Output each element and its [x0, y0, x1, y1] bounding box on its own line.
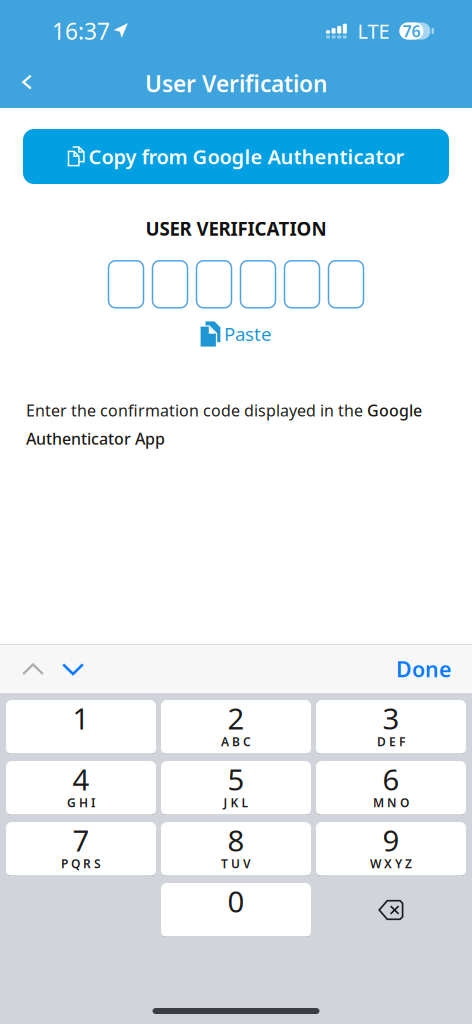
staticText: LTE — [357, 18, 389, 44]
button[interactable]: Digit 2 — [152, 261, 187, 308]
staticText: 8 — [227, 820, 244, 859]
button[interactable]: Back — [0, 60, 50, 103]
button[interactable]: 2 — [161, 700, 311, 754]
button[interactable]: 6 — [316, 761, 466, 815]
staticText: 76 — [402, 20, 420, 42]
button[interactable]: Digit 3 — [196, 261, 231, 308]
button[interactable]: 4 — [6, 761, 156, 815]
staticText: 2 — [227, 698, 244, 737]
staticText: G H I — [67, 794, 95, 810]
staticText: 3 — [382, 698, 399, 737]
staticText: J K L — [223, 794, 248, 810]
button[interactable]: 8 — [161, 822, 311, 876]
staticText: M N O — [373, 794, 409, 810]
button[interactable]: 1 — [6, 700, 156, 754]
button[interactable]: Paste — [200, 318, 272, 350]
button[interactable]: Digit 4 — [240, 261, 275, 308]
staticText: 0 — [227, 881, 244, 920]
button[interactable]: Previous field — [6, 651, 53, 687]
staticText: 1 — [72, 698, 89, 737]
button[interactable]: 0 — [161, 883, 311, 937]
staticText: 7 — [72, 820, 89, 859]
button[interactable]: Delete — [316, 883, 466, 937]
staticText: Enter the confirmation code displayed in… — [26, 400, 422, 449]
staticText: 6 — [382, 759, 399, 798]
staticText: 16:37 — [52, 16, 110, 46]
staticText: 5 — [227, 759, 244, 798]
staticText: W X Y Z — [370, 855, 412, 871]
button[interactable]: Digit 6 — [328, 261, 363, 308]
button[interactable]: 7 — [6, 822, 156, 876]
staticText: User Verification — [145, 68, 327, 98]
staticText: P Q R S — [61, 855, 101, 871]
staticText: D E F — [377, 733, 405, 749]
staticText: Done — [396, 655, 451, 683]
button[interactable]: Digit 5 — [284, 261, 319, 308]
button[interactable]: Done — [375, 645, 466, 693]
staticText: USER VERIFICATION — [145, 216, 326, 241]
button[interactable]: 9 — [316, 822, 466, 876]
staticText: A B C — [221, 733, 251, 749]
staticText: Paste — [224, 321, 272, 346]
button[interactable]: 3 — [316, 700, 466, 754]
button[interactable]: 5 — [161, 761, 311, 815]
staticText: T U V — [221, 855, 251, 871]
staticText: 4 — [72, 759, 89, 798]
button[interactable]: Digit 1 — [108, 261, 143, 308]
button[interactable]: Copy from Google Authenticator — [23, 129, 449, 184]
staticText: Copy from Google Authenticator — [88, 143, 404, 170]
button[interactable]: Next field — [53, 651, 100, 687]
staticText: 9 — [382, 820, 399, 859]
